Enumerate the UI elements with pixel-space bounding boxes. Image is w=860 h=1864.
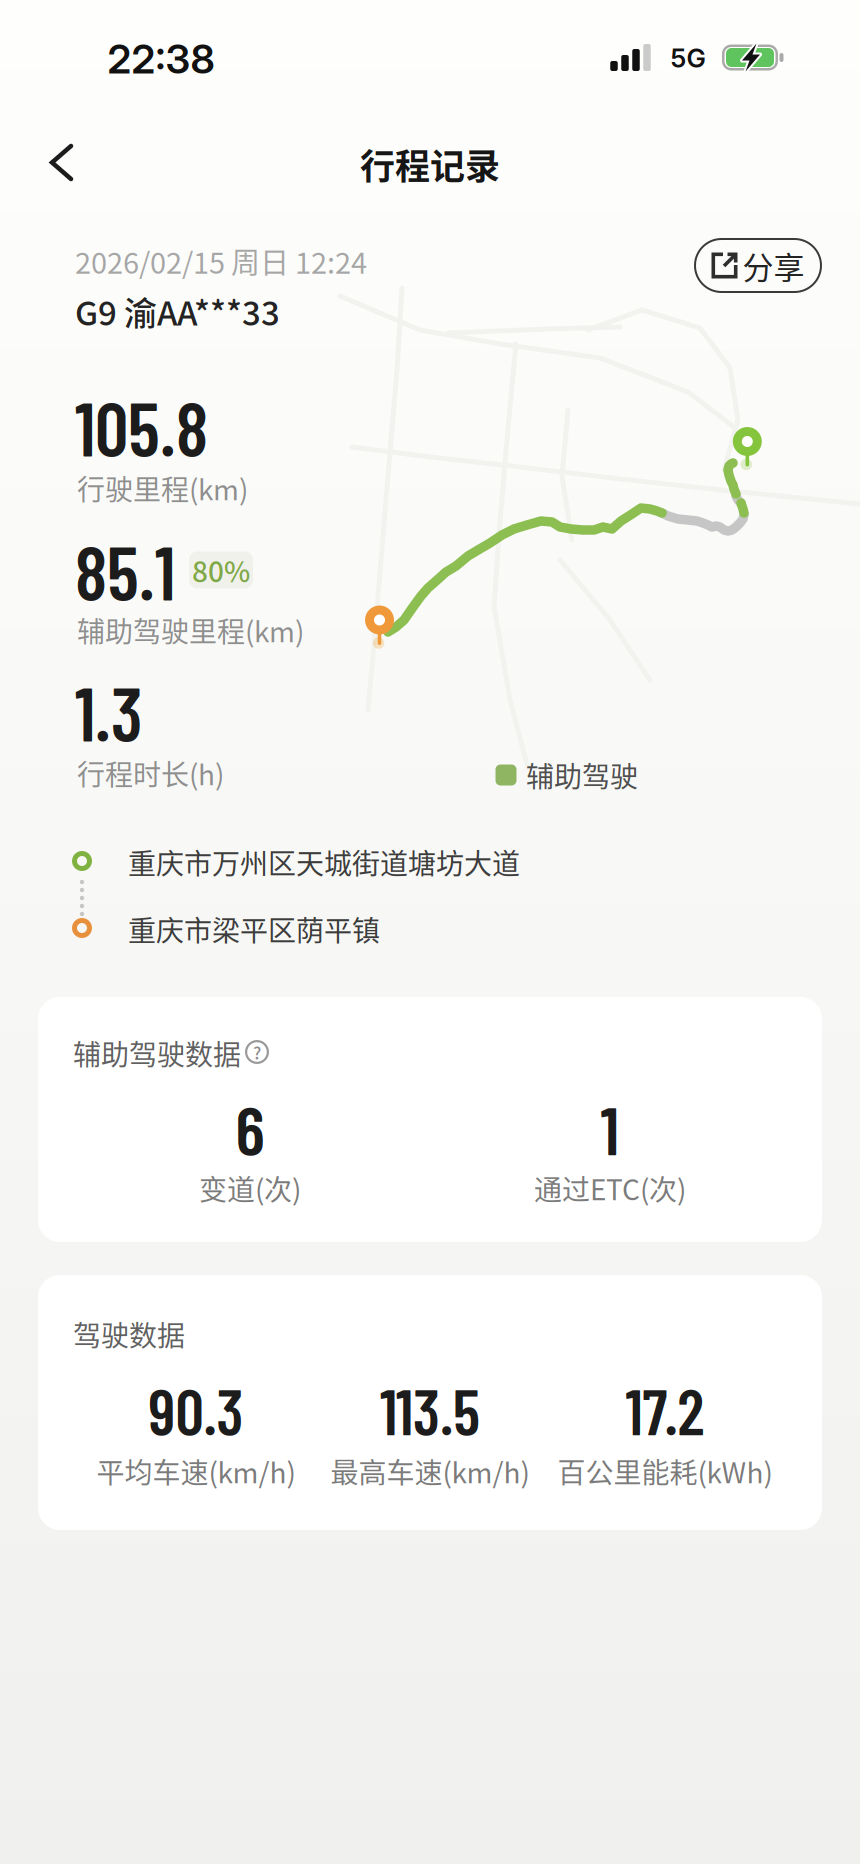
staticText: 通过ETC(次) (534, 1168, 686, 1208)
staticText: 5G (670, 42, 705, 74)
staticText: 113.5 (380, 1372, 480, 1448)
staticText: 105.8 (75, 383, 208, 471)
staticText: 辅助驾驶 (526, 755, 638, 795)
button[interactable] (49, 144, 75, 182)
staticText: 行程时长(h) (77, 753, 224, 793)
staticText: 1 (600, 1087, 619, 1169)
staticText: 驾驶数据 (73, 1314, 185, 1354)
staticText: 行程记录 (360, 139, 500, 189)
staticText: 1.3 (75, 668, 143, 756)
staticText: 重庆市梁平区荫平镇 (128, 909, 380, 949)
staticText: 平均车速(km/h) (96, 1451, 295, 1491)
staticText: ? (253, 1040, 261, 1064)
staticText: 重庆市万州区天城街道塘坊大道 (128, 842, 520, 882)
staticText: 80% (192, 550, 250, 590)
staticText: 变道(次) (199, 1168, 301, 1208)
staticText: 行驶里程(km) (77, 468, 248, 508)
staticText: 22:38 (107, 35, 214, 83)
button[interactable]: ? (245, 1040, 269, 1064)
staticText: 百公里能耗(kWh) (557, 1451, 772, 1491)
staticText: 辅助驾驶数据 (73, 1033, 241, 1073)
staticText: G9 渝AA***33 (75, 287, 280, 335)
staticText: 90.3 (148, 1372, 243, 1448)
staticText: 2026/02/15 周日 12:24 (75, 240, 367, 282)
staticText: 最高车速(km/h) (330, 1451, 529, 1491)
staticText: 辅助驾驶里程(km) (77, 610, 304, 650)
staticText: 分享 (742, 243, 804, 288)
staticText: 17.2 (625, 1372, 704, 1448)
staticText: 6 (235, 1087, 264, 1169)
button[interactable]: 分享 (694, 238, 822, 293)
staticText: 85.1 (75, 527, 175, 615)
